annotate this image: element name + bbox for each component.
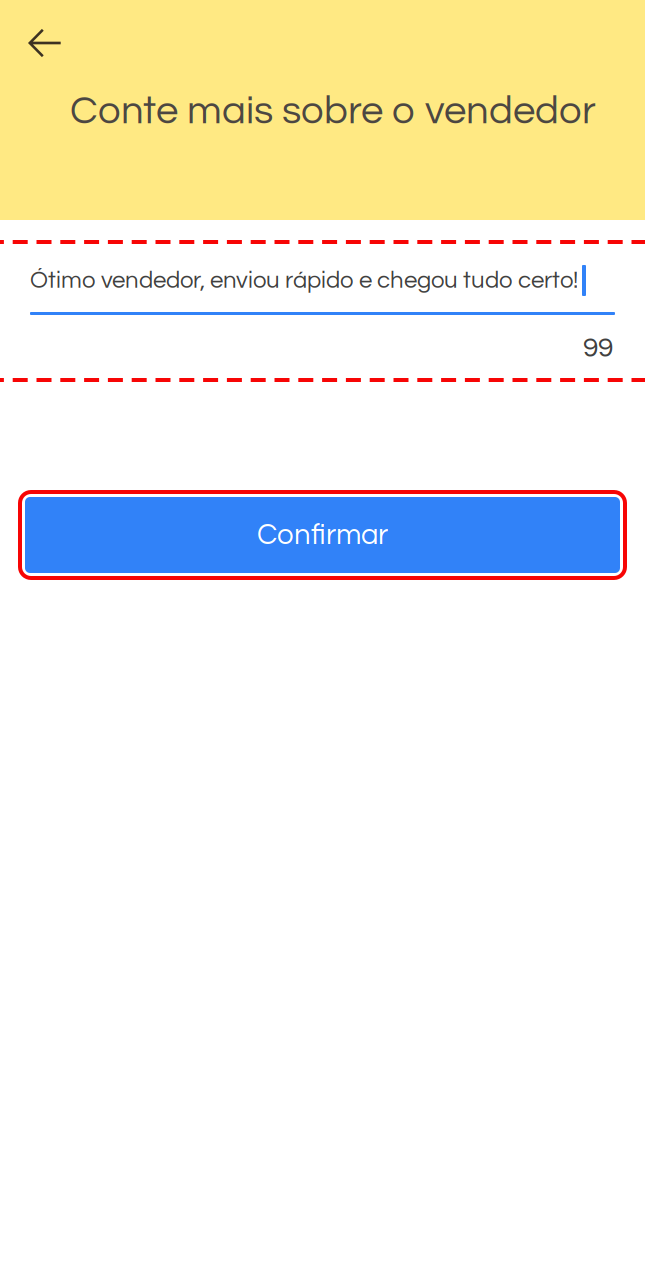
button[interactable]: Confirmar: [18, 490, 627, 580]
staticText: Conte mais sobre o vendedor: [70, 90, 596, 132]
staticText: Confirmar: [257, 520, 388, 550]
staticText: Ótimo vendedor, enviou rápido e chegou t…: [30, 268, 578, 293]
button[interactable]: Voltar: [13, 12, 77, 74]
staticText: 99: [583, 334, 613, 362]
